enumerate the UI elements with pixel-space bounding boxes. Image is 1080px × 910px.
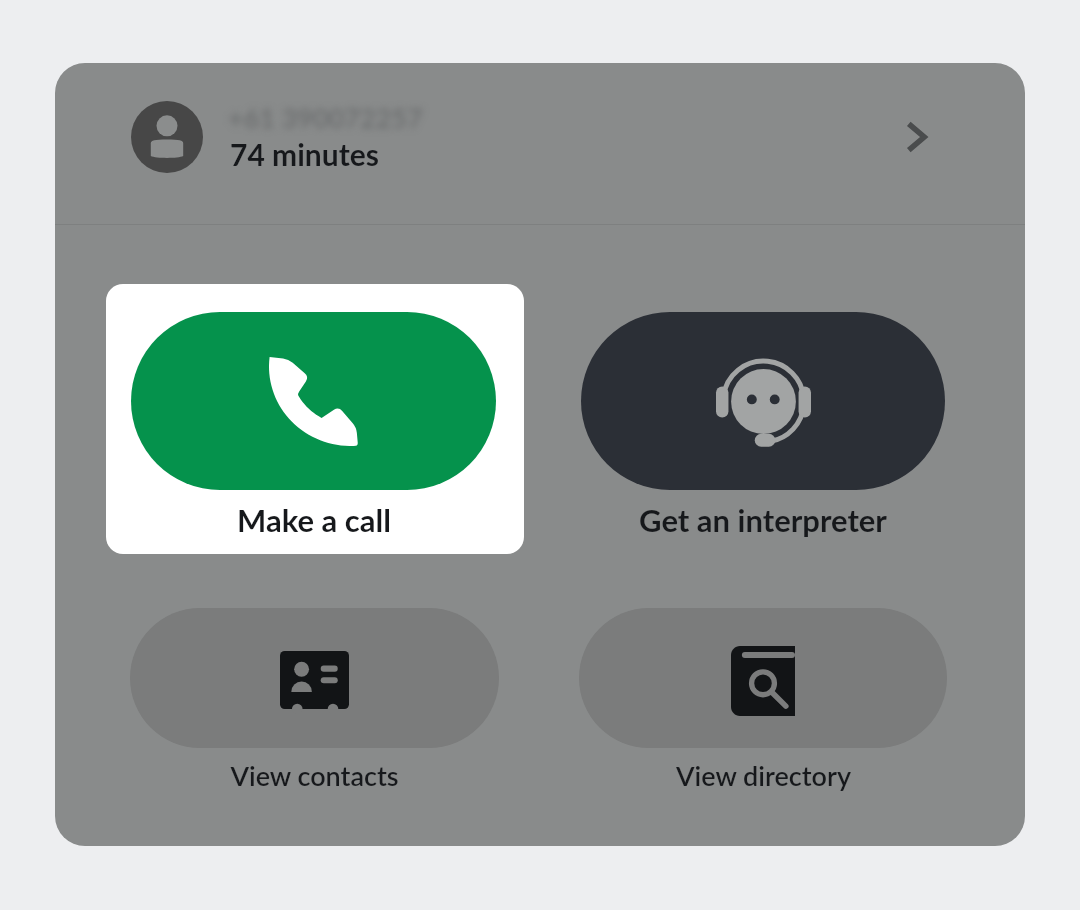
button[interactable] bbox=[106, 284, 524, 554]
staticText: Make a call bbox=[237, 501, 391, 538]
button[interactable]: Make a call bbox=[131, 501, 496, 538]
staticText: View contacts bbox=[230, 759, 399, 791]
button[interactable] bbox=[581, 312, 945, 490]
button[interactable] bbox=[55, 63, 1025, 224]
staticText: 74 minutes bbox=[230, 136, 379, 172]
button[interactable] bbox=[131, 312, 496, 490]
button[interactable]: View directory bbox=[579, 759, 947, 791]
button[interactable]: Get an interpreter bbox=[581, 501, 945, 538]
button[interactable] bbox=[130, 608, 499, 748]
staticText: View directory bbox=[676, 759, 851, 791]
staticText: +61 390072257 bbox=[228, 101, 423, 133]
button[interactable]: View contacts bbox=[130, 759, 499, 791]
button[interactable]: Open call details bbox=[886, 107, 946, 167]
button[interactable] bbox=[579, 608, 947, 748]
staticText: Get an interpreter bbox=[639, 501, 887, 538]
